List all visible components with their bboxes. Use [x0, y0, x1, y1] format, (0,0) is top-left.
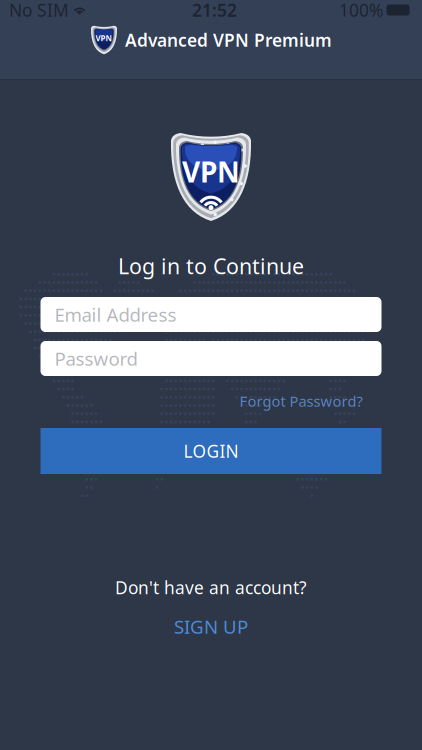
- staticText: Log in to Continue: [118, 252, 304, 280]
- staticText: Email Address: [54, 302, 176, 327]
- staticText: Password: [54, 346, 137, 371]
- staticText: SIGN UP: [174, 614, 248, 639]
- staticText: No SIM: [9, 0, 69, 21]
- button[interactable]: LOGIN: [40, 428, 381, 474]
- staticText: 21:52: [192, 0, 237, 21]
- staticText: Don't have an account?: [115, 576, 307, 599]
- staticText: Advanced VPN Premium: [125, 28, 332, 51]
- button[interactable]: Password: [40, 341, 381, 376]
- staticText: LOGIN: [183, 439, 238, 462]
- button[interactable]: Email Address: [40, 297, 381, 332]
- button[interactable]: Forgot Password?: [239, 390, 381, 412]
- button[interactable]: SIGN UP: [174, 614, 248, 639]
- staticText: 100%: [339, 0, 383, 21]
- staticText: Forgot Password?: [239, 391, 362, 411]
- staticText: VPN: [95, 33, 112, 43]
- staticText: VPN: [182, 153, 240, 190]
